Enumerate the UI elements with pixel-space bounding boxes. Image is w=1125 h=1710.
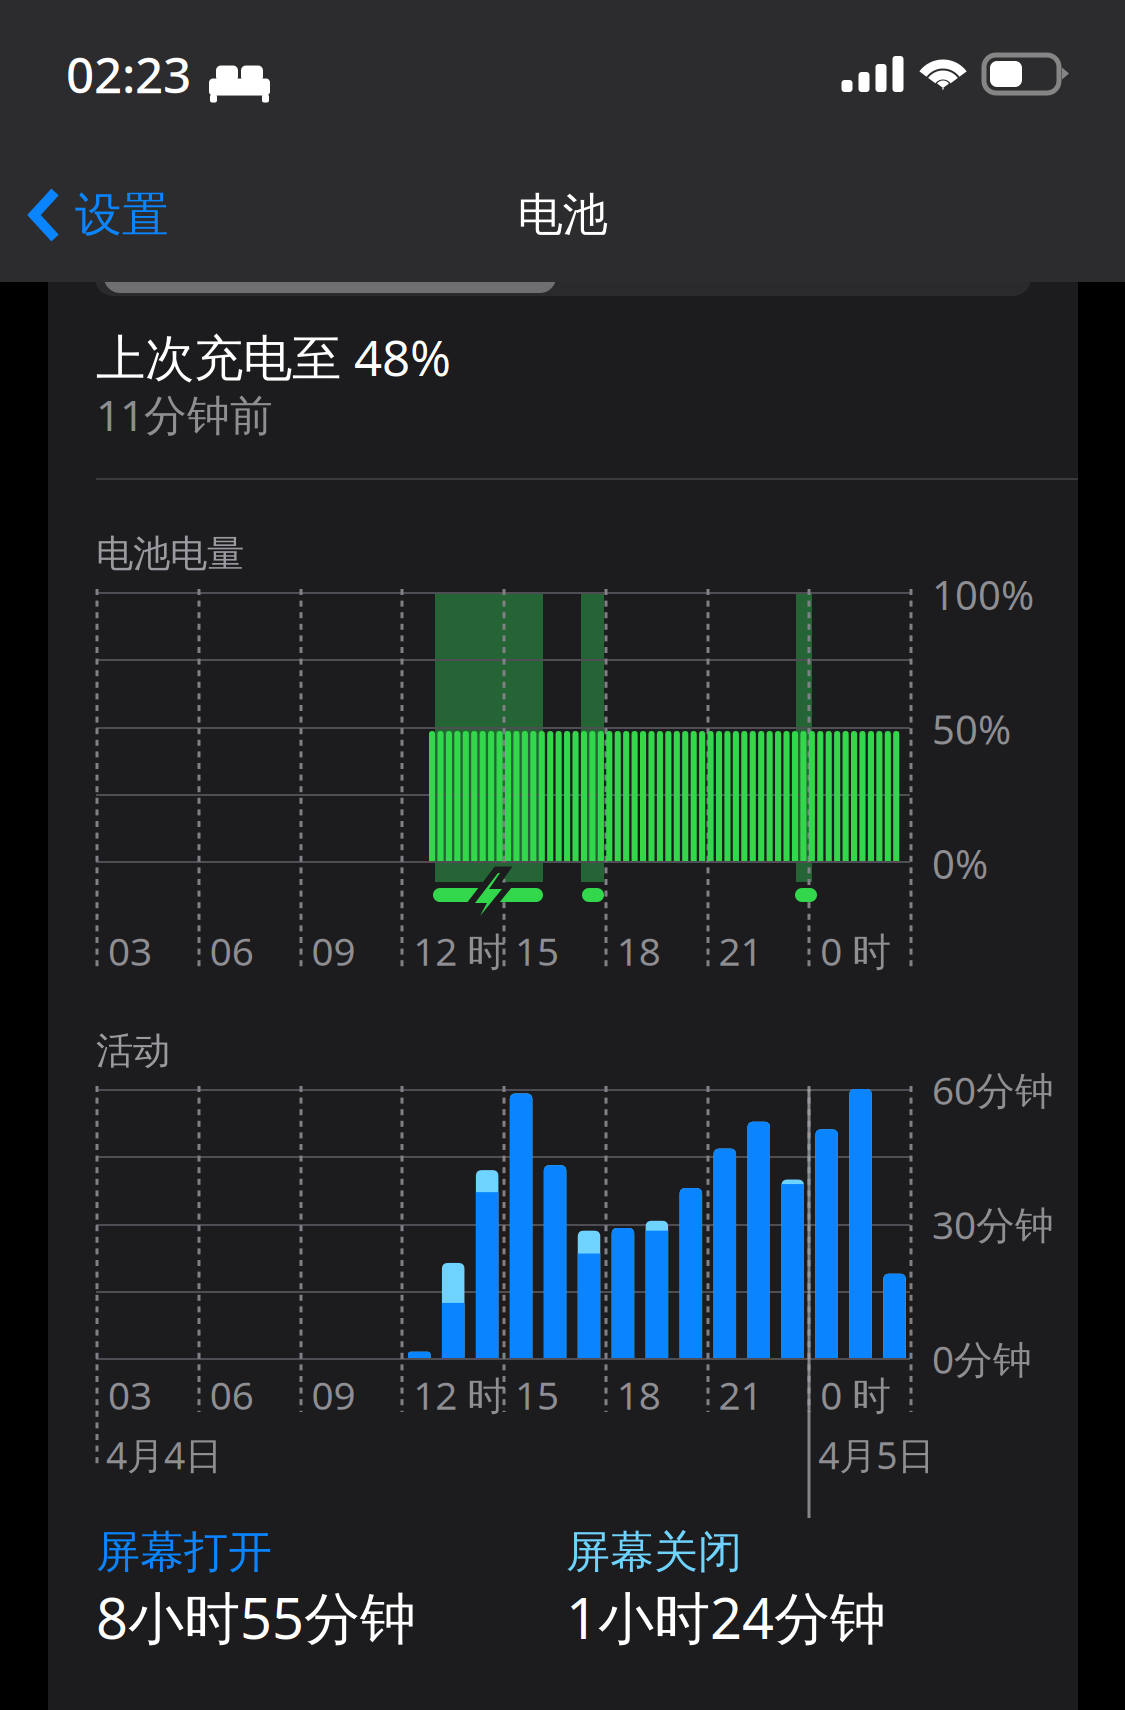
staticText: 03 <box>108 925 152 976</box>
staticText: 4月4日 <box>106 1430 222 1480</box>
staticText: 30分钟 <box>932 1198 1054 1250</box>
staticText: 0 时 <box>820 1369 891 1420</box>
staticText: 06 <box>210 1369 254 1420</box>
staticText: 50% <box>932 702 1011 756</box>
staticText: 09 <box>311 925 355 976</box>
staticText: 09 <box>311 1369 355 1420</box>
staticText: 电池 <box>517 187 607 243</box>
staticText: 15 <box>515 925 559 976</box>
staticText: 15 <box>515 1369 559 1420</box>
staticText: 18 <box>617 925 661 976</box>
staticText: 8小时55分钟 <box>96 1580 416 1654</box>
staticText: 0 时 <box>820 925 891 976</box>
staticText: 03 <box>108 1369 152 1420</box>
staticText: 屏幕打开 <box>96 1525 272 1579</box>
staticText: 12 时 <box>413 1369 506 1420</box>
staticText: 18 <box>617 1369 661 1420</box>
staticText: 100% <box>932 568 1034 621</box>
staticText: 0% <box>932 837 988 890</box>
staticText: 60分钟 <box>932 1064 1054 1115</box>
staticText: 0分钟 <box>932 1333 1032 1384</box>
staticText: 电池电量 <box>96 531 244 577</box>
staticText: 屏幕关闭 <box>566 1525 742 1579</box>
staticText: 设置 <box>75 186 169 244</box>
staticText: 12 时 <box>413 925 506 976</box>
staticText: 21 <box>718 1369 762 1420</box>
staticText: 活动 <box>96 1028 170 1074</box>
staticText: 21 <box>718 925 762 976</box>
staticText: 11分钟前 <box>96 386 273 443</box>
button[interactable]: 设置 <box>0 168 169 262</box>
staticText: 上次充电至 48% <box>96 324 451 389</box>
staticText: 06 <box>210 925 254 976</box>
staticText: 4月5日 <box>818 1430 934 1480</box>
staticText: 02:23 <box>66 41 191 107</box>
staticText: 1小时24分钟 <box>566 1580 886 1654</box>
